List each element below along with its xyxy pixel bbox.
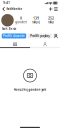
staticText: 9:41 (3, 1, 10, 5)
staticText: takipçi (32, 20, 40, 24)
staticText: Profili düzenle (3, 34, 25, 38)
button[interactable]: Discover people (53, 33, 58, 38)
staticText: fatihberke (6, 7, 22, 11)
staticText: Henüz hiç gönderi yok (13, 88, 46, 91)
button[interactable]: New post (48, 6, 53, 12)
button[interactable]: Menu (53, 6, 58, 12)
staticText: 0 (20, 17, 22, 20)
button[interactable]: Tagged (30, 41, 60, 48)
button[interactable]: 252 (44, 17, 59, 24)
button[interactable]: Profili düzenle (2, 33, 26, 38)
button[interactable]: 139 (29, 17, 44, 24)
staticText: Profili paylaş (30, 34, 49, 38)
staticText: 139 (33, 17, 39, 20)
staticText: 252 (48, 17, 54, 20)
button[interactable]: Posts (0, 41, 30, 48)
staticText: takip (48, 20, 54, 24)
button[interactable]: 0 (14, 17, 29, 24)
staticText: gönderi (15, 20, 27, 24)
button[interactable]: Profili paylaş (27, 33, 52, 38)
button[interactable]: Back (2, 6, 6, 12)
staticText: Fatih Berke (2, 27, 17, 31)
